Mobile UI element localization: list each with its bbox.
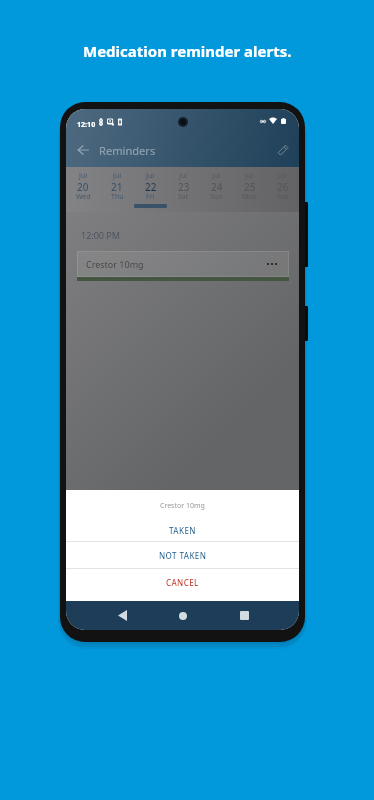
staticText: Sat (178, 192, 189, 202)
staticText: Crestor 10mg (86, 258, 144, 270)
staticText: 23 (178, 180, 190, 194)
staticText: 22 (145, 180, 157, 194)
staticText: 24 (211, 180, 223, 194)
staticText: Jul (79, 171, 88, 181)
button[interactable]: Home (169, 601, 197, 630)
staticText: Fri (146, 192, 155, 202)
staticText: Jul (212, 171, 221, 181)
staticText: Thu (111, 192, 124, 202)
button[interactable]: Back (71, 133, 95, 167)
button[interactable]: Back (108, 601, 136, 630)
staticText: Crestor 10mg (160, 501, 205, 511)
staticText: Jul (278, 171, 287, 181)
button[interactable]: Jul (66, 167, 100, 212)
staticText: Jul (146, 171, 155, 181)
staticText: TAKEN (169, 525, 196, 536)
staticText: Sun (210, 192, 223, 202)
button[interactable]: Jul (100, 167, 134, 212)
button[interactable]: CANCEL (66, 569, 299, 601)
button[interactable]: TAKEN (66, 518, 299, 542)
button[interactable]: Crestor 10mg (66, 490, 299, 518)
staticText: 26 (277, 180, 289, 194)
staticText: Reminders (99, 143, 156, 158)
staticText: Medication reminder alerts. (83, 41, 292, 61)
staticText: NOT TAKEN (159, 550, 207, 561)
button[interactable]: Recent apps (230, 601, 258, 630)
button[interactable]: Crestor 10mg (77, 251, 289, 281)
staticText: 25 (244, 180, 256, 194)
staticText: 21 (111, 180, 123, 194)
button[interactable]: Edit (271, 133, 295, 167)
button[interactable]: Jul (167, 167, 200, 212)
staticText: 20 (77, 180, 89, 194)
button[interactable]: Jul (200, 167, 233, 212)
button[interactable]: Jul (233, 167, 266, 212)
staticText: Jul (113, 171, 122, 181)
staticText: 12:00 PM (81, 229, 120, 241)
staticText: Jul (245, 171, 254, 181)
staticText: 12:10 (77, 119, 96, 129)
staticText: Mon (242, 192, 257, 202)
button[interactable]: NOT TAKEN (66, 542, 299, 568)
button[interactable]: Jul (134, 167, 167, 212)
staticText: Jul (179, 171, 188, 181)
staticText: Wed (76, 192, 91, 202)
button[interactable]: More options (265, 257, 279, 271)
staticText: Tue (277, 192, 289, 202)
staticText: CANCEL (166, 577, 199, 588)
